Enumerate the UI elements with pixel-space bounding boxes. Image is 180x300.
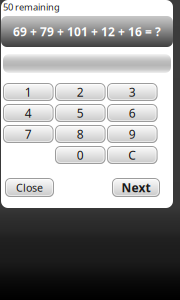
button[interactable]: 4	[3, 104, 53, 122]
staticText: C	[128, 147, 136, 163]
staticText: 6	[129, 105, 136, 121]
staticText: 8	[77, 126, 84, 142]
staticText: 7	[25, 126, 32, 142]
button[interactable]: 7	[3, 125, 53, 143]
staticText: 9	[129, 126, 136, 142]
button[interactable]: 0	[55, 146, 105, 164]
button[interactable]: 6	[107, 104, 157, 122]
staticText: 4	[25, 105, 32, 121]
staticText: Next	[121, 179, 150, 195]
staticText: 2	[77, 84, 84, 100]
staticText: 69 + 79 + 101 + 12 + 16 = ?	[13, 23, 161, 39]
button[interactable]: 9	[107, 125, 157, 143]
staticText: 50 remaining	[3, 1, 60, 13]
button[interactable]: 3	[107, 83, 157, 101]
button[interactable]: 2	[55, 83, 105, 101]
staticText: Close	[16, 180, 43, 195]
button[interactable]: 1	[3, 83, 53, 101]
staticText: 3	[129, 84, 136, 100]
button[interactable]: 5	[55, 104, 105, 122]
button[interactable]: Close	[5, 178, 54, 197]
staticText: 0	[77, 147, 84, 163]
staticText: 1	[25, 84, 32, 100]
button[interactable]: C	[107, 146, 157, 164]
button[interactable]: 8	[55, 125, 105, 143]
staticText: 5	[77, 105, 84, 121]
button[interactable]: Next	[112, 178, 160, 197]
